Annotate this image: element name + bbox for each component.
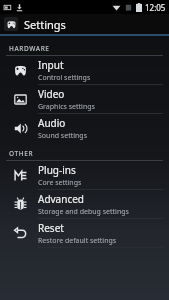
button[interactable]: Plug-ins [0, 161, 169, 189]
button[interactable]: Reset [0, 219, 169, 247]
other: Video [13, 92, 28, 107]
button[interactable]: Input [0, 56, 169, 84]
staticText: Video [38, 87, 65, 101]
staticText: Audio [38, 116, 66, 130]
other: Plug-ins [13, 168, 28, 183]
staticText: Storage and debug settings [38, 207, 129, 217]
staticText: OTHER [9, 149, 34, 158]
button[interactable]: Advanced [0, 190, 169, 218]
staticText: Settings [24, 17, 66, 32]
button[interactable]: Audio [0, 114, 169, 142]
staticText: Plug-ins [38, 163, 76, 177]
staticText: 12:05 [145, 2, 166, 13]
button[interactable]: Video [0, 85, 169, 113]
staticText: Core settings [38, 178, 82, 188]
staticText: Restore default settings [38, 236, 117, 246]
staticText: Advanced [38, 192, 84, 206]
other: Advanced [13, 197, 28, 212]
staticText: HARDWARE [9, 44, 50, 53]
other: Input [13, 63, 28, 78]
staticText: Input [38, 58, 64, 72]
other: Reset [13, 226, 28, 241]
other: Audio [13, 121, 28, 136]
staticText: Graphics settings [38, 102, 95, 112]
staticText: Sound settings [38, 131, 87, 141]
other: Input [6, 19, 17, 30]
staticText: Reset [38, 221, 64, 235]
staticText: Control settings [38, 73, 91, 83]
button[interactable]: Input [0, 14, 169, 34]
